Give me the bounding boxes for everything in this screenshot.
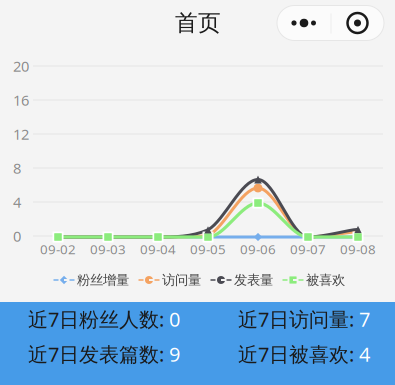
staticText: 0 xyxy=(13,226,21,246)
staticText: 20 xyxy=(13,56,29,76)
staticText: 16 xyxy=(13,90,29,110)
staticText: 被喜欢 xyxy=(306,272,345,288)
staticText: 4 xyxy=(13,192,21,212)
staticText: 09-08 xyxy=(340,240,376,258)
staticText: 近7日被喜欢: xyxy=(238,341,359,367)
staticText: 12 xyxy=(13,124,29,144)
staticText: 近7日访问量: xyxy=(238,306,359,332)
staticText: 首页 xyxy=(175,9,221,37)
staticText: 09-04 xyxy=(140,240,176,258)
staticText: 09-07 xyxy=(290,240,326,258)
staticText: 近7日发表篇数: xyxy=(28,341,169,367)
staticText: 09-05 xyxy=(190,240,226,258)
staticText: 近7日粉丝人数: xyxy=(28,306,169,332)
staticText: 粉丝增量 xyxy=(77,272,129,288)
staticText: 09-02 xyxy=(40,240,76,258)
staticText: 7 xyxy=(359,306,370,332)
staticText: 发表量 xyxy=(234,272,273,288)
staticText: 8 xyxy=(13,158,21,178)
staticText: 4 xyxy=(359,341,370,367)
staticText: 09-06 xyxy=(240,240,276,258)
staticText: 0 xyxy=(169,306,180,332)
staticText: 访问量 xyxy=(162,272,201,288)
button[interactable]: More xyxy=(277,5,384,40)
staticText: 9 xyxy=(169,341,180,367)
staticText: 09-03 xyxy=(90,240,126,258)
